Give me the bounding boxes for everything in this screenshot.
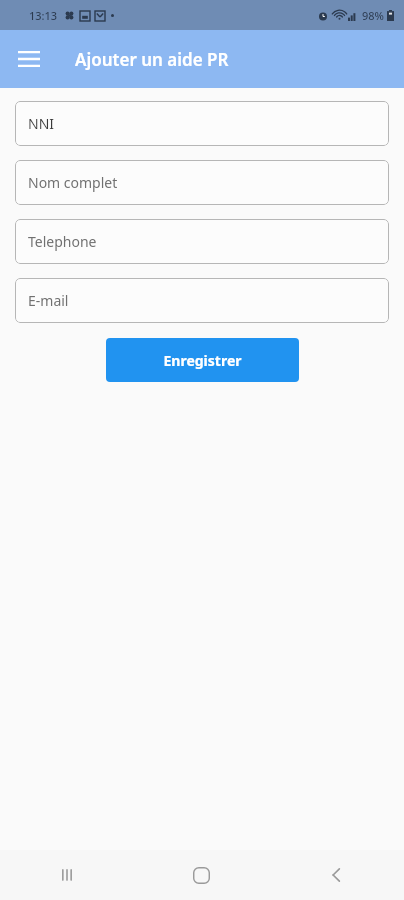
- button[interactable]: NNI: [15, 101, 389, 146]
- staticText: 13:13: [29, 8, 58, 23]
- button[interactable]: Back: [269, 850, 404, 900]
- staticText: Nom complet: [28, 173, 118, 192]
- staticText: 98%: [362, 8, 384, 23]
- staticText: Telephone: [28, 232, 97, 251]
- button[interactable]: Recent apps: [0, 850, 134, 900]
- staticText: Enregistrer: [163, 351, 242, 370]
- button[interactable]: Open navigation menu: [10, 40, 48, 78]
- button[interactable]: Enregistrer: [106, 338, 299, 382]
- button[interactable]: Home: [134, 850, 269, 900]
- staticText: NNI: [28, 114, 55, 133]
- button[interactable]: E-mail: [15, 278, 389, 323]
- button[interactable]: Telephone: [15, 219, 389, 264]
- staticText: Ajouter un aide PR: [75, 48, 229, 71]
- button[interactable]: Nom complet: [15, 160, 389, 205]
- staticText: E-mail: [28, 291, 69, 310]
